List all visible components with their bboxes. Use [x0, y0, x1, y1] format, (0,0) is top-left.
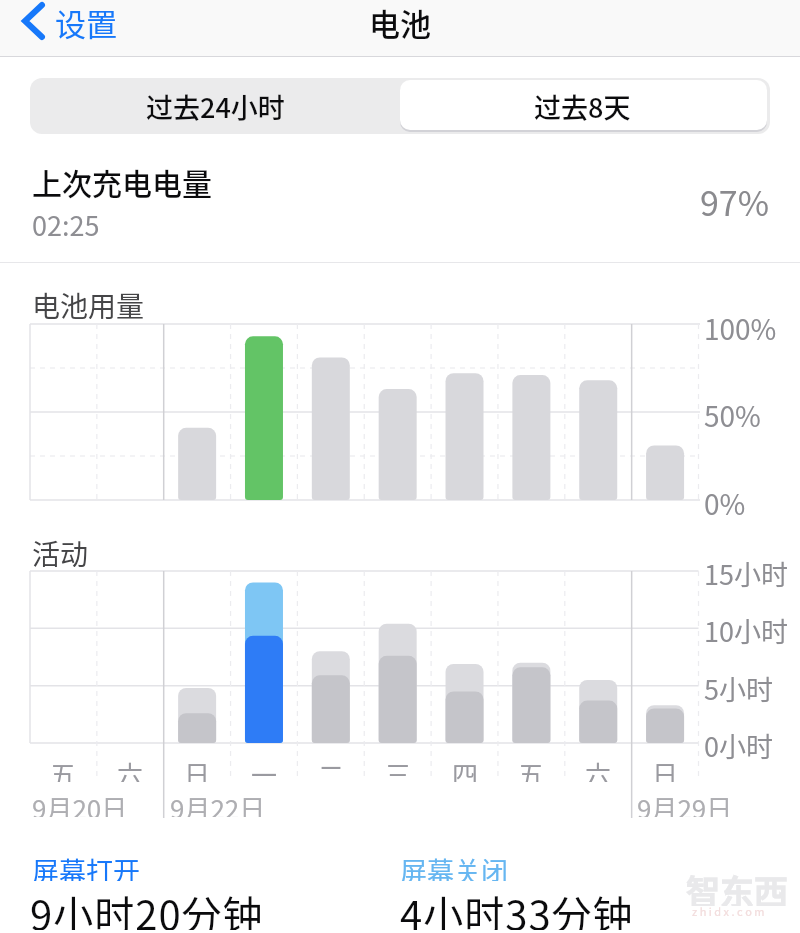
staticText: z h i d x . c o m	[692, 903, 765, 919]
staticText: 活动	[32, 533, 89, 567]
button[interactable]: 设置	[22, 0, 117, 42]
staticText: 9月22日	[170, 789, 266, 817]
staticText: 9月20日	[32, 789, 128, 817]
staticText: 六	[585, 755, 612, 782]
staticText: 电池	[369, 0, 431, 42]
staticText: 二	[318, 755, 345, 782]
staticText: 9小时20分钟	[30, 884, 264, 930]
staticText: 日	[652, 755, 679, 782]
staticText: 屏幕关闭	[400, 851, 508, 881]
staticText: 三	[385, 755, 412, 782]
staticText: 10小时	[704, 611, 788, 645]
staticText: 0%	[704, 483, 746, 517]
staticText: 5小时	[704, 669, 773, 703]
staticText: 0小时	[704, 726, 773, 760]
staticText: 9月29日	[637, 789, 733, 817]
staticText: 日	[184, 755, 211, 782]
staticText: 六	[117, 755, 144, 782]
staticText: 过去8天	[534, 87, 631, 126]
staticText: 100%	[704, 308, 777, 342]
staticText: 五	[518, 755, 545, 782]
staticText: 一	[251, 755, 278, 782]
staticText: 设置	[55, 0, 117, 42]
staticText: 15小时	[704, 554, 788, 588]
staticText: 4小时33分钟	[400, 884, 634, 930]
staticText: 97%	[700, 177, 770, 226]
staticText: 四	[452, 755, 479, 782]
button[interactable]: 过去24小时	[30, 78, 401, 134]
staticText: 上次充电电量	[32, 160, 212, 200]
staticText: 五	[50, 755, 77, 782]
staticText: 电池用量	[32, 285, 145, 319]
staticText: 屏幕打开	[32, 851, 140, 881]
staticText: 50%	[704, 395, 761, 429]
staticText: 02:25	[32, 205, 100, 239]
button[interactable]: 过去8天	[398, 78, 767, 134]
staticText: 过去24小时	[146, 87, 285, 126]
staticText: 智东西	[686, 866, 788, 906]
